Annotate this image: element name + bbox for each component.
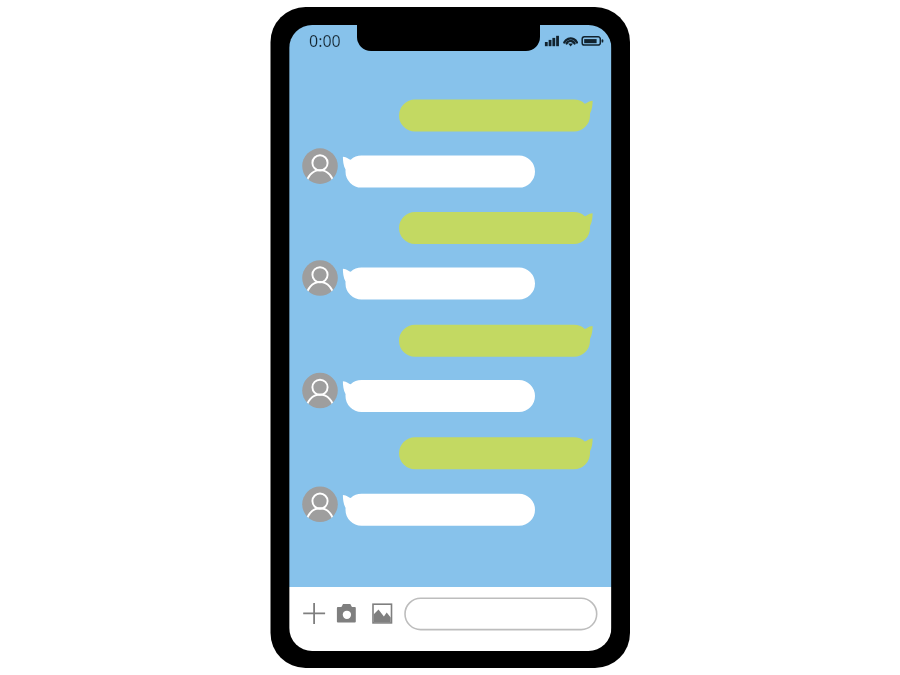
button[interactable]: Contact avatar ${i + 1}	[302, 374, 338, 410]
button[interactable]: Contact avatar ${i + 1}	[302, 488, 338, 524]
button[interactable]: Message input field	[405, 598, 597, 630]
staticText: 0:00	[309, 30, 341, 52]
button[interactable]: Contact avatar ${i + 1}	[302, 262, 338, 298]
button[interactable]: Received message ${i + 1}	[342, 380, 535, 412]
button[interactable]: Received message ${i + 1}	[342, 156, 535, 188]
button[interactable]: Sent message ${i + 1}	[399, 212, 592, 244]
button[interactable]: Received message ${i + 1}	[342, 268, 535, 300]
button[interactable]: Take photo	[336, 603, 356, 624]
button[interactable]: Sent message ${i + 1}	[399, 437, 592, 469]
button[interactable]: Add attachment	[302, 602, 326, 625]
button[interactable]: Choose image	[372, 603, 393, 624]
button[interactable]: Received message ${i + 1}	[342, 494, 535, 526]
button[interactable]: Contact avatar ${i + 1}	[302, 150, 338, 186]
button[interactable]: Sent message ${i + 1}	[399, 100, 592, 132]
button[interactable]: Sent message ${i + 1}	[399, 325, 592, 357]
